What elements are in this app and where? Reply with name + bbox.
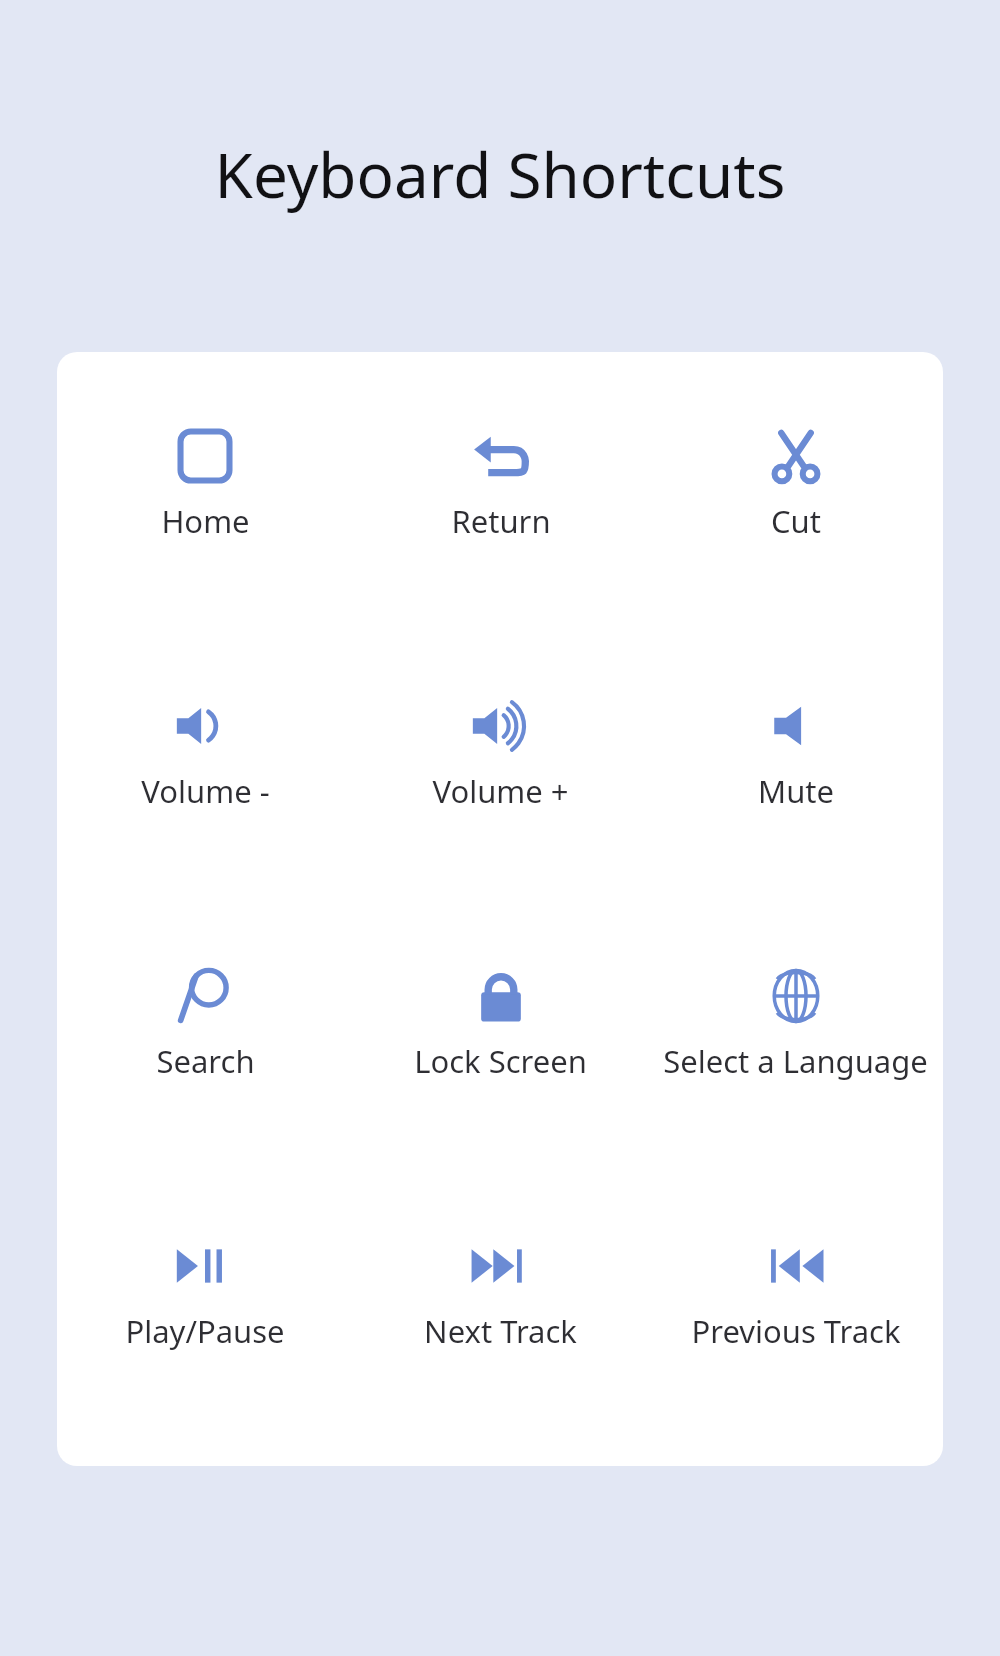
staticText: Return — [451, 500, 551, 542]
staticText: Lock Screen — [414, 1040, 587, 1082]
staticText: Keyboard Shortcuts — [0, 132, 1000, 216]
button[interactable]: Next track — [353, 1234, 648, 1352]
button[interactable]: Volume up — [353, 694, 648, 812]
other: Next track — [469, 1234, 533, 1298]
other: Volume up — [469, 694, 533, 758]
button[interactable]: Lock screen — [353, 964, 648, 1082]
other: Return — [469, 424, 533, 488]
staticText: Volume - — [141, 770, 270, 812]
other: Cut — [764, 424, 828, 488]
staticText: Mute — [758, 770, 834, 812]
other: Search — [173, 964, 237, 1028]
button[interactable]: Mute — [648, 694, 943, 812]
button[interactable]: Volume down — [57, 694, 353, 812]
other: Play or pause — [173, 1234, 237, 1298]
other: Previous track — [764, 1234, 828, 1298]
staticText: Volume + — [432, 770, 569, 812]
staticText: Previous Track — [691, 1310, 901, 1352]
button[interactable]: Cut — [648, 424, 943, 542]
staticText: Cut — [771, 500, 821, 542]
staticText: Select a Language — [663, 1040, 928, 1082]
other: Lock screen — [469, 964, 533, 1028]
button[interactable]: Select a language — [648, 964, 943, 1082]
other: Select a language — [764, 964, 828, 1028]
staticText: Next Track — [424, 1310, 577, 1352]
staticText: Search — [156, 1040, 255, 1082]
button[interactable]: Return — [353, 424, 648, 542]
button[interactable]: Home — [57, 424, 353, 542]
other: Home — [173, 424, 237, 488]
staticText: Play/Pause — [125, 1310, 285, 1352]
button[interactable]: Play or pause — [57, 1234, 353, 1352]
other: Mute — [764, 694, 828, 758]
other: Volume down — [173, 694, 237, 758]
staticText: Home — [161, 500, 250, 542]
button[interactable]: Previous track — [648, 1234, 943, 1352]
button[interactable]: Search — [57, 964, 353, 1082]
